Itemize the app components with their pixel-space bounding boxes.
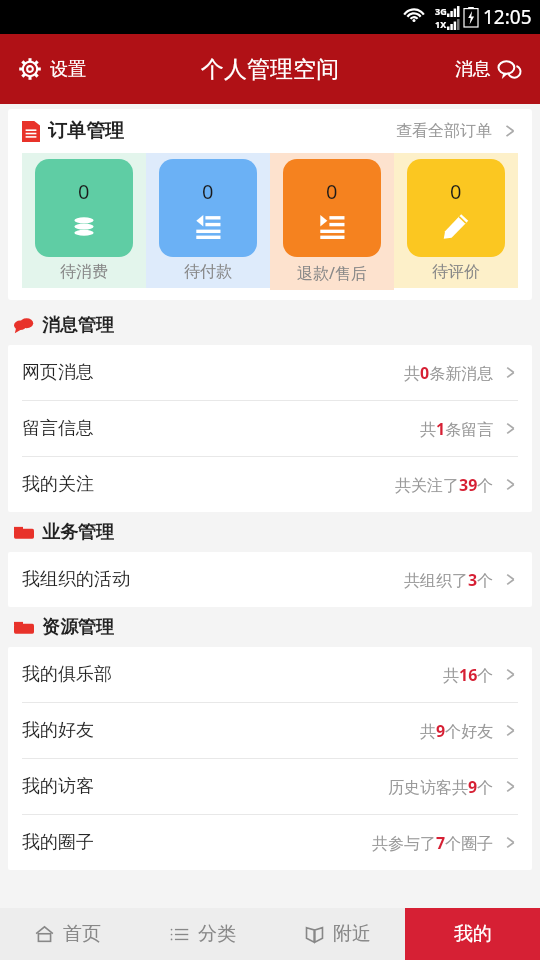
staticText: 我的关注 [22, 473, 94, 496]
staticText: 我的访客 [22, 775, 94, 798]
staticText: 历史访客共9个 [388, 776, 494, 798]
staticText: 查看全部订单 [396, 121, 492, 141]
staticText: 共1条留言 [420, 418, 494, 440]
staticText: 共0条新消息 [404, 362, 494, 384]
button[interactable]: 消息 [449, 51, 528, 87]
staticText: 我组织的活动 [22, 568, 130, 591]
staticText: 待评价 [432, 262, 480, 282]
staticText: 我的 [454, 922, 492, 946]
staticText: 共16个 [443, 664, 494, 686]
button[interactable]: 设置 [12, 51, 92, 87]
staticText: 0 [326, 178, 338, 205]
staticText: 共关注了39个 [395, 474, 494, 496]
button[interactable]: 留言信息 [8, 401, 532, 456]
button[interactable]: 0 [270, 153, 394, 290]
staticText: 0 [78, 178, 90, 205]
staticText: 待付款 [184, 262, 232, 282]
staticText: 我的好友 [22, 719, 94, 742]
button[interactable]: 0 [394, 153, 518, 288]
staticText: 附近 [333, 922, 371, 946]
button[interactable]: 我的圈子 [8, 815, 532, 870]
staticText: 共组织了3个 [404, 569, 494, 591]
button[interactable]: 首页 [0, 908, 135, 960]
staticText: 分类 [198, 922, 236, 946]
staticText: 消息管理 [42, 314, 114, 337]
staticText: 12:05 [483, 4, 532, 30]
button[interactable]: 网页消息 [8, 345, 532, 400]
staticText: 共9个好友 [420, 720, 494, 742]
staticText: 留言信息 [22, 417, 94, 440]
staticText: 个人管理空间 [201, 55, 339, 84]
staticText: 业务管理 [42, 521, 114, 544]
staticText: 3G [435, 5, 447, 17]
button[interactable]: 分类 [135, 908, 270, 960]
staticText: 共参与了7个圈子 [372, 832, 494, 854]
staticText: 我的圈子 [22, 831, 94, 854]
button[interactable]: 我的好友 [8, 703, 532, 758]
button[interactable]: 0 [22, 153, 146, 288]
button[interactable]: 附近 [270, 908, 405, 960]
button[interactable]: 订单管理 [8, 109, 532, 153]
staticText: 0 [450, 178, 462, 205]
staticText: 我的俱乐部 [22, 663, 112, 686]
staticText: 待消费 [60, 262, 108, 282]
staticText: 消息 [455, 58, 491, 81]
button[interactable]: 0 [146, 153, 270, 288]
staticText: 1X [435, 18, 447, 30]
staticText: 订单管理 [48, 119, 124, 143]
button[interactable]: 我的 [405, 908, 540, 960]
button[interactable]: 我的访客 [8, 759, 532, 814]
button[interactable]: 我的关注 [8, 457, 532, 512]
staticText: 0 [202, 178, 214, 205]
button[interactable]: 我的俱乐部 [8, 647, 532, 702]
staticText: 网页消息 [22, 361, 94, 384]
button[interactable]: 我组织的活动 [8, 552, 532, 607]
staticText: 设置 [50, 58, 86, 81]
staticText: 退款/售后 [297, 262, 367, 284]
staticText: 首页 [63, 922, 101, 946]
staticText: 资源管理 [42, 616, 114, 639]
